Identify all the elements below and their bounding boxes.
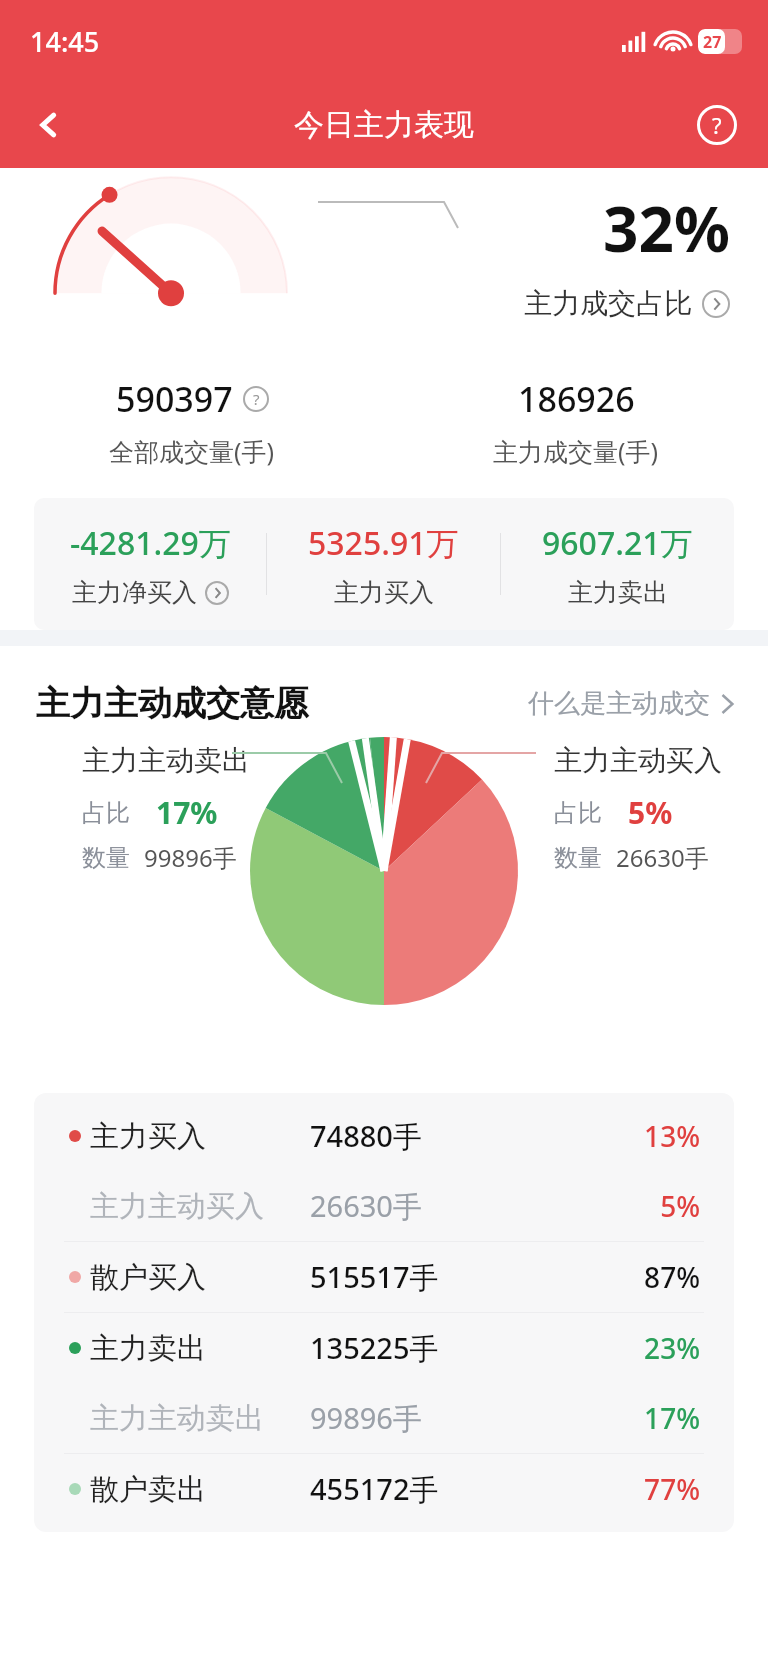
staticText: 散户买入 — [90, 1259, 310, 1296]
staticText: 17% — [644, 1399, 700, 1437]
button[interactable]: 5325.91万 — [267, 498, 500, 630]
button[interactable]: 什么是主动成交 — [528, 687, 736, 720]
staticText: -4281.29万 — [70, 521, 231, 565]
staticText: 455172手 — [310, 1469, 644, 1509]
staticText: 87% — [644, 1258, 700, 1296]
staticText: 17% — [156, 792, 218, 833]
button[interactable]: 散户卖出 — [34, 1454, 734, 1524]
staticText: 5% — [660, 1187, 700, 1225]
staticText: ? — [253, 389, 260, 409]
button[interactable]: Help — [686, 94, 748, 156]
staticText: 数量 — [82, 843, 130, 873]
staticText: 77% — [644, 1470, 700, 1508]
staticText: 主力成交占比 — [524, 286, 692, 321]
staticText: 590397 — [116, 376, 233, 422]
staticText: 主力主动买入 — [90, 1188, 310, 1225]
staticText: 26630手 — [616, 841, 709, 874]
staticText: 什么是主动成交 — [528, 687, 710, 720]
staticText: 32% — [603, 186, 730, 270]
staticText: 主力主动成交意愿 — [36, 682, 308, 725]
staticText: ? — [712, 110, 722, 140]
staticText: 515517手 — [310, 1257, 644, 1297]
button[interactable]: 主力主动买入 — [34, 1171, 734, 1241]
button[interactable]: Info — [243, 386, 269, 412]
staticText: 99896手 — [144, 841, 237, 874]
button[interactable]: 主力买入 — [34, 1101, 734, 1171]
staticText: 13% — [644, 1117, 700, 1155]
staticText: 14:45 — [30, 23, 100, 60]
staticText: 26630手 — [310, 1186, 660, 1226]
staticText: 占比 — [82, 798, 130, 828]
staticText: 9607.21万 — [542, 521, 693, 565]
staticText: 主力主动卖出 — [90, 1400, 310, 1437]
button[interactable]: 主力成交占比 — [524, 286, 730, 321]
staticText: 74880手 — [310, 1116, 644, 1156]
staticText: 27 — [703, 31, 722, 53]
staticText: 5325.91万 — [308, 521, 459, 565]
button[interactable]: -4281.29万 — [34, 498, 266, 630]
staticText: 主力主动卖出 — [82, 743, 250, 778]
staticText: 数量 — [554, 843, 602, 873]
staticText: 5% — [628, 792, 673, 833]
button[interactable]: 主力卖出 — [34, 1313, 734, 1383]
staticText: 186926 — [518, 376, 635, 422]
button[interactable]: 散户买入 — [34, 1242, 734, 1312]
staticText: 主力成交量(手) — [493, 434, 659, 468]
staticText: 主力买入 — [90, 1118, 310, 1155]
button[interactable]: 主力主动卖出 — [34, 1383, 734, 1453]
staticText: 主力卖出 — [90, 1330, 310, 1367]
staticText: 主力卖出 — [568, 577, 668, 608]
staticText: 主力买入 — [334, 577, 434, 608]
staticText: 全部成交量(手) — [109, 434, 275, 468]
button[interactable]: Back — [18, 94, 80, 156]
staticText: 主力主动买入 — [554, 743, 722, 778]
staticText: 散户卖出 — [90, 1471, 310, 1508]
staticText: 今日主力表现 — [294, 106, 474, 144]
staticText: 主力净买入 — [72, 577, 197, 608]
staticText: 99896手 — [310, 1398, 644, 1438]
staticText: 占比 — [554, 798, 602, 828]
staticText: 23% — [644, 1329, 700, 1367]
staticText: 135225手 — [310, 1328, 644, 1368]
button[interactable]: 9607.21万 — [501, 498, 734, 630]
